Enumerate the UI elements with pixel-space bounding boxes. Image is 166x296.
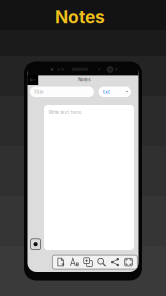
button[interactable]: Share (108, 256, 122, 269)
staticText: Notes (78, 77, 90, 82)
button[interactable]: Title (30, 86, 94, 97)
button[interactable]: Text style (68, 256, 81, 269)
button[interactable]: Record (31, 239, 41, 250)
staticText: txt (103, 89, 110, 95)
button[interactable]: Search (95, 256, 108, 269)
button[interactable]: txt (98, 86, 131, 97)
staticText: Title (34, 89, 44, 95)
staticText: Write text here.. (48, 110, 83, 115)
staticText: Notes (55, 6, 105, 27)
button[interactable]: New note (54, 256, 68, 269)
button[interactable]: Duplicate (81, 256, 95, 269)
button[interactable]: Scan (122, 256, 135, 269)
button[interactable]: Back (27, 75, 38, 85)
